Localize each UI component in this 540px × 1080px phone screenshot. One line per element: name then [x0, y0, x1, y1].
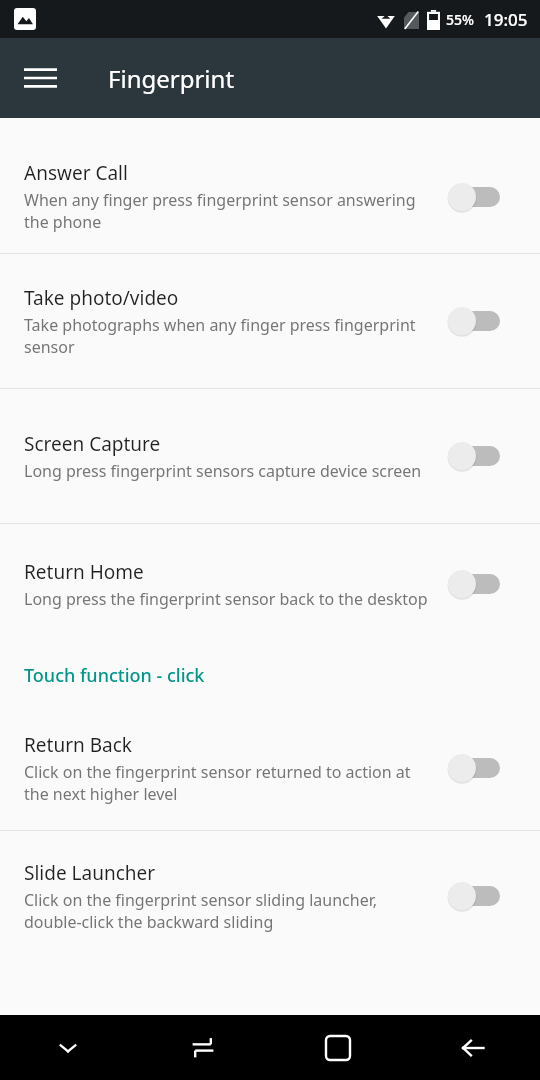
staticText: Take photo/video	[24, 285, 179, 311]
button[interactable]: Take photo/video	[0, 254, 540, 388]
button[interactable]: Home	[270, 1015, 405, 1080]
button[interactable]: Return Back	[0, 706, 540, 830]
button[interactable]: Back	[405, 1015, 540, 1080]
button[interactable]: Screen Capture	[0, 389, 540, 523]
staticText: Answer Call	[24, 160, 128, 186]
staticText: When any finger press fingerprint sensor…	[24, 189, 436, 233]
staticText: Return Back	[24, 732, 132, 758]
staticText: 55%	[446, 10, 474, 29]
staticText: Click on the fingerprint sensor returned…	[24, 761, 436, 805]
staticText: Return Home	[24, 559, 144, 585]
staticText: Long press the fingerprint sensor back t…	[24, 588, 428, 610]
staticText: Long press fingerprint sensors capture d…	[24, 460, 422, 482]
button[interactable]: Hide keyboard	[0, 1015, 135, 1080]
button[interactable]: Switch input method	[135, 1015, 270, 1080]
button[interactable]: Return Home	[0, 524, 540, 644]
staticText: Fingerprint	[108, 62, 235, 95]
staticText: Click on the fingerprint sensor sliding …	[24, 889, 436, 933]
button[interactable]: Touch function - click	[0, 644, 540, 706]
staticText: 19:05	[484, 8, 528, 31]
button[interactable]: Answer Call	[0, 140, 540, 253]
staticText: Take photographs when any finger press f…	[24, 314, 436, 358]
button[interactable]: Slide Launcher	[0, 831, 540, 961]
staticText: Slide Launcher	[24, 860, 156, 886]
staticText: Screen Capture	[24, 431, 161, 457]
staticText: Touch function - click	[24, 663, 205, 688]
button[interactable]: Open navigation menu	[14, 52, 66, 104]
